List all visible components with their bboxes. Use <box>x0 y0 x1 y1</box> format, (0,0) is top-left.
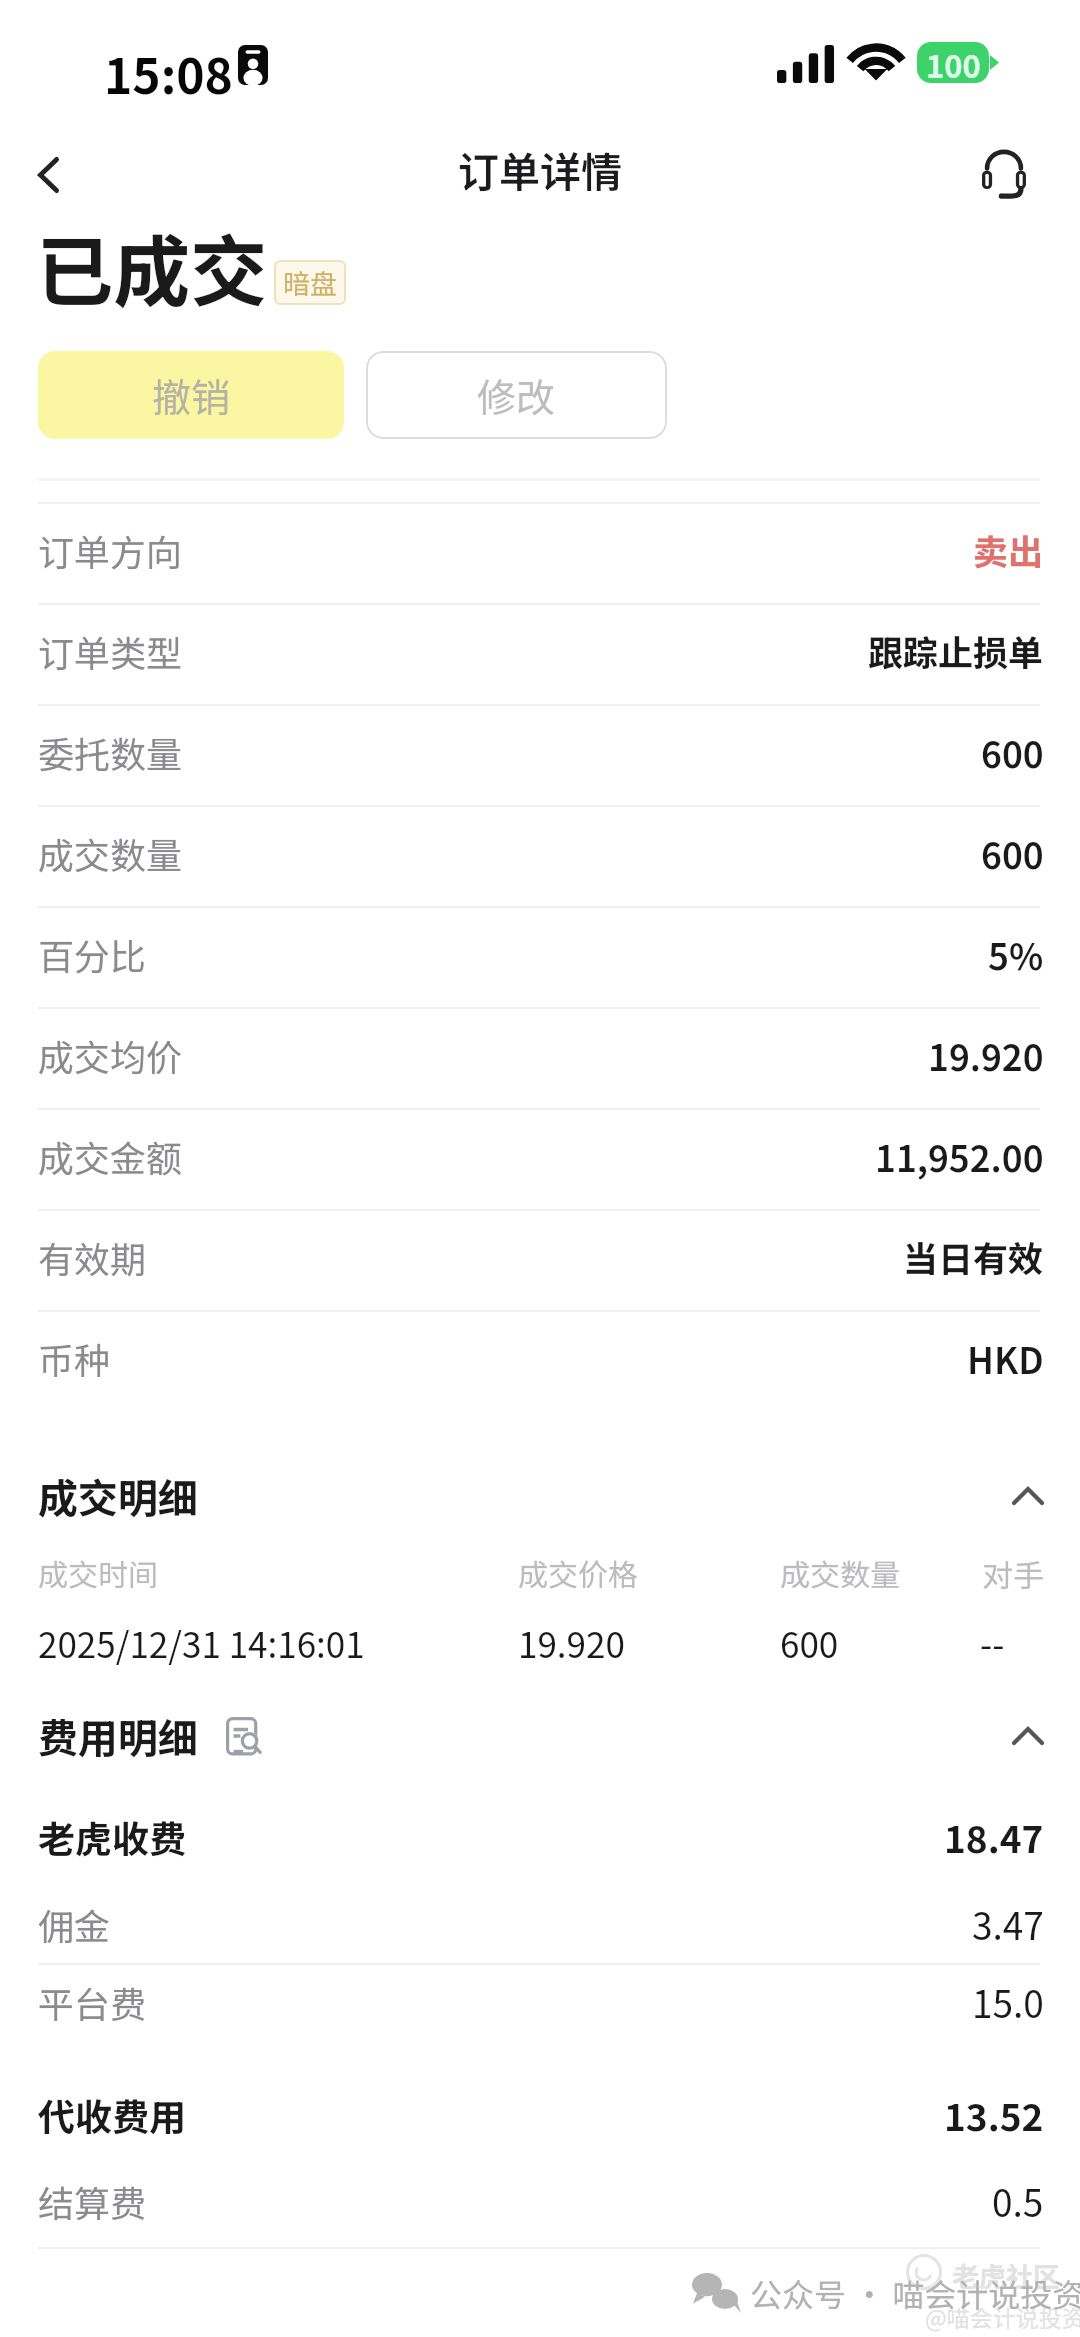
staticText: 成交时间 <box>38 1551 158 1594</box>
staticText: 成交数量 <box>780 1551 900 1594</box>
staticText: 18.47 <box>944 1810 1044 1864</box>
button[interactable]: 撤销 <box>38 351 344 439</box>
staticText: 成交数量 <box>38 827 183 879</box>
staticText: 订单详情 <box>458 139 622 198</box>
staticText: 有效期 <box>38 1231 147 1283</box>
button[interactable]: Customer service <box>962 131 1046 215</box>
staticText: 3.47 <box>972 1897 1044 1951</box>
staticText: 成交明细 <box>38 1467 198 1525</box>
staticText: 11,952.00 <box>875 1130 1044 1182</box>
button[interactable]: 币种 <box>0 1310 1080 1411</box>
staticText: 订单类型 <box>38 625 183 677</box>
button[interactable]: 修改 <box>366 351 667 439</box>
staticText: 平台费 <box>38 1976 147 2028</box>
staticText: 成交金额 <box>38 1130 183 1182</box>
staticText: 百分比 <box>38 928 147 980</box>
staticText: 0.5 <box>992 2174 1044 2228</box>
staticText: 跟踪止损单 <box>868 625 1044 676</box>
staticText: -- <box>980 1617 1005 1668</box>
staticText: 已成交 <box>36 211 267 322</box>
staticText: 5% <box>988 928 1044 980</box>
staticText: 成交均价 <box>38 1029 183 1081</box>
button[interactable]: 有效期 <box>0 1209 1080 1310</box>
staticText: 600 <box>780 1617 839 1668</box>
staticText: 老虎社区 <box>952 2256 1060 2295</box>
staticText: 2025/12/31 14:16:01 <box>38 1617 365 1668</box>
staticText: 19.920 <box>928 1029 1044 1081</box>
staticText: 卖出 <box>973 524 1044 575</box>
staticText: 币种 <box>38 1332 111 1384</box>
staticText: 19.920 <box>518 1617 625 1668</box>
staticText: 600 <box>981 827 1044 879</box>
staticText: 100 <box>926 42 981 83</box>
button[interactable]: 订单类型 <box>0 603 1080 704</box>
staticText: HKD <box>967 1332 1044 1384</box>
button[interactable]: 成交金额 <box>0 1108 1080 1209</box>
button[interactable]: 委托数量 <box>0 704 1080 805</box>
staticText: 成交价格 <box>518 1551 638 1594</box>
button[interactable]: 订单方向 <box>0 502 1080 603</box>
staticText: 公众号 · 喵会计说投资 <box>750 2270 1080 2316</box>
button[interactable]: 成交明细 <box>38 1465 1044 1527</box>
staticText: 600 <box>981 726 1044 778</box>
staticText: 结算费 <box>38 2175 147 2227</box>
button[interactable]: 成交均价 <box>0 1007 1080 1108</box>
staticText: 委托数量 <box>38 726 183 778</box>
staticText: 当日有效 <box>903 1231 1044 1282</box>
staticText: 撤销 <box>152 367 231 423</box>
staticText: 13.52 <box>944 2088 1044 2142</box>
staticText: 代收费用 <box>38 2088 186 2142</box>
button[interactable]: 百分比 <box>0 906 1080 1007</box>
button[interactable]: 成交数量 <box>0 805 1080 906</box>
staticText: 订单方向 <box>38 524 183 576</box>
staticText: 15:08 <box>104 38 233 108</box>
staticText: 老虎收费 <box>38 1810 186 1864</box>
staticText: 修改 <box>477 367 556 423</box>
button[interactable]: Back <box>6 133 90 217</box>
staticText: 费用明细 <box>38 1707 198 1765</box>
staticText: @喵会计说投资 <box>925 2300 1080 2333</box>
button[interactable]: 费用明细 <box>38 1705 1044 1767</box>
staticText: 暗盘 <box>283 263 337 302</box>
staticText: 对手 <box>982 1551 1044 1596</box>
staticText: 15.0 <box>972 1975 1044 2029</box>
staticText: 佣金 <box>38 1898 111 1950</box>
